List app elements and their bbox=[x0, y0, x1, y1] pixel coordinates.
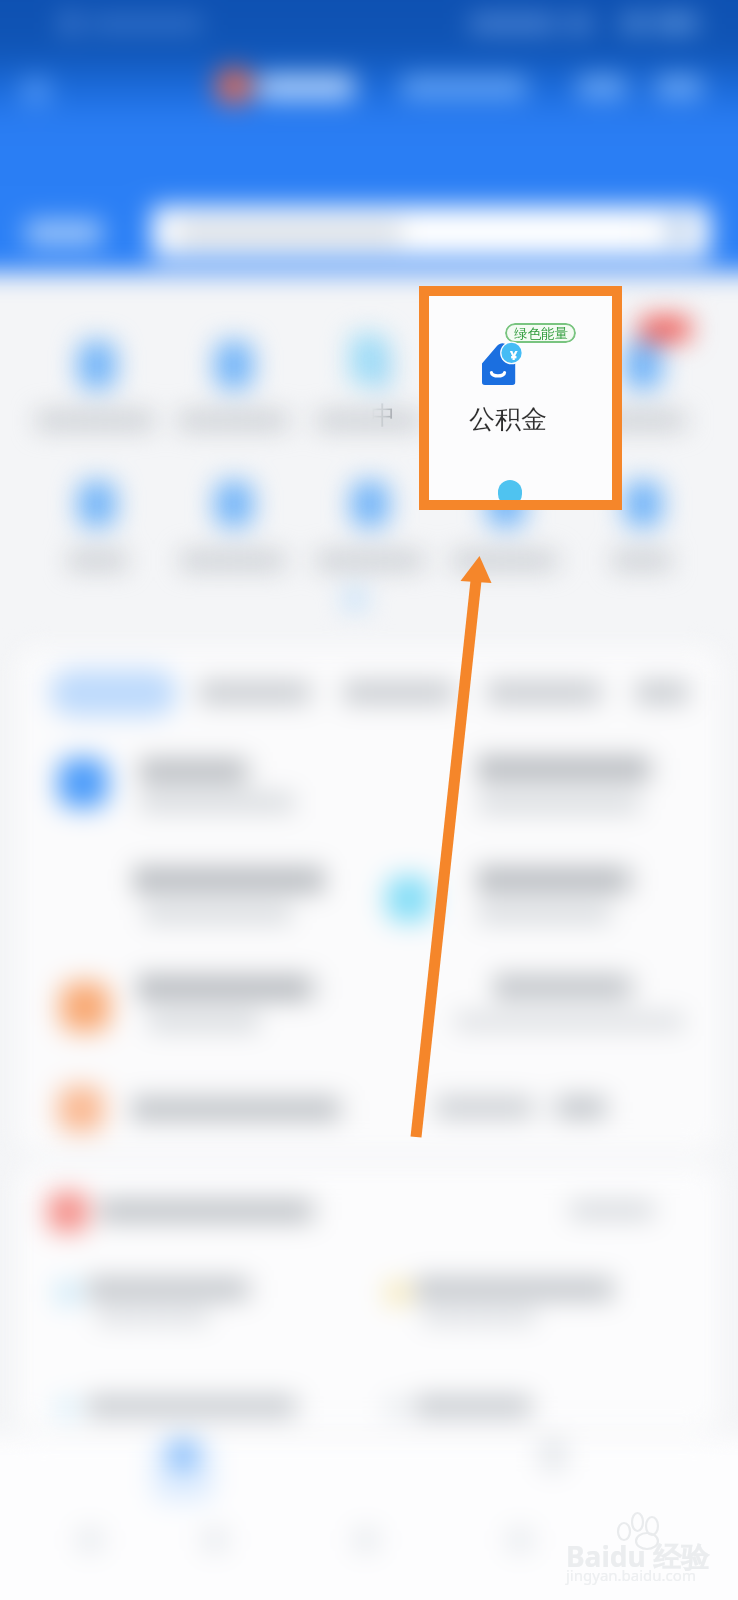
staticText: ¥ bbox=[510, 346, 518, 364]
staticText: jingyan.baidu.com bbox=[566, 1565, 696, 1585]
staticText: 公积金 bbox=[469, 403, 547, 436]
staticText: Baidu 经验 bbox=[566, 1537, 709, 1575]
staticText: 绿色能量 bbox=[514, 325, 568, 342]
staticText: 中心 bbox=[371, 400, 419, 434]
other: Pointer arrow bbox=[0, 0, 738, 1600]
button[interactable]: 绿色能量 bbox=[419, 286, 622, 510]
